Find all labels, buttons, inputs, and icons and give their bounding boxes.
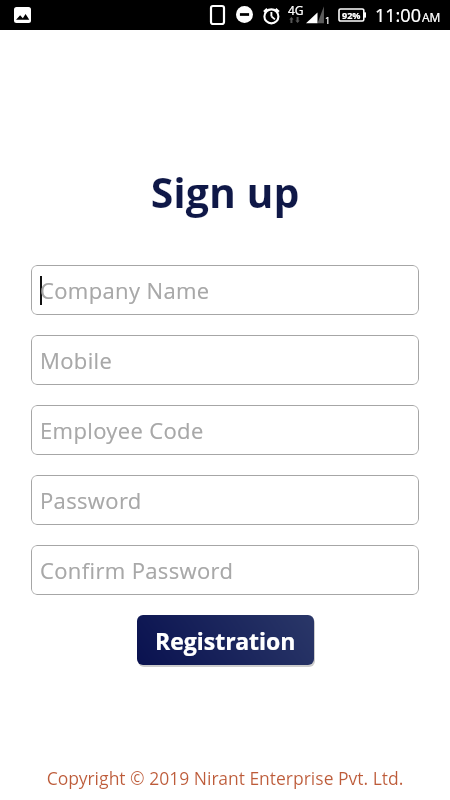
other: Screenshot — [14, 7, 31, 23]
staticText: Employee Code — [40, 415, 204, 445]
button[interactable]: Employee Code — [31, 405, 419, 455]
staticText: 1 — [325, 14, 331, 26]
staticText: 4G — [288, 2, 304, 18]
button[interactable]: Registration — [137, 615, 314, 665]
staticText: Confirm Password — [40, 555, 234, 585]
button[interactable]: Mobile — [31, 335, 419, 385]
staticText: Company Name — [40, 275, 210, 305]
staticText: 11:00 — [375, 3, 421, 28]
staticText: Mobile — [40, 345, 113, 375]
button[interactable]: Company Name — [31, 265, 419, 315]
staticText: AM — [422, 9, 441, 25]
button[interactable]: Password — [31, 475, 419, 525]
staticText: Registration — [155, 625, 296, 656]
staticText: Copyright © 2019 Nirant Enterprise Pvt. … — [0, 766, 450, 790]
button[interactable]: Confirm Password — [31, 545, 419, 595]
staticText: Password — [40, 485, 142, 515]
staticText: Sign up — [0, 164, 450, 220]
staticText: 92% — [342, 9, 361, 21]
